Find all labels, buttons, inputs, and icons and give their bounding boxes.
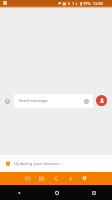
button[interactable]: Photos bbox=[35, 172, 47, 184]
button[interactable]: Recents bbox=[75, 185, 112, 200]
staticText: Send message bbox=[19, 98, 48, 104]
staticText: Updating your location... bbox=[14, 161, 63, 167]
button[interactable]: Back bbox=[0, 185, 38, 200]
button[interactable]: Emoji bbox=[2, 96, 13, 107]
button[interactable]: Updating your location... bbox=[0, 155, 112, 172]
button[interactable]: Home bbox=[38, 185, 75, 200]
staticText: ⚑ ▣ ✕ ↑↓ ▮ 97% 13:00 bbox=[58, 1, 103, 6]
button[interactable]: History bbox=[50, 172, 62, 184]
button[interactable]: Send message bbox=[14, 94, 93, 108]
button[interactable]: Contacts bbox=[96, 95, 107, 106]
button[interactable]: Keyboard bbox=[21, 172, 33, 184]
button[interactable]: Voice bbox=[64, 172, 76, 184]
button[interactable]: Location bbox=[78, 172, 90, 184]
